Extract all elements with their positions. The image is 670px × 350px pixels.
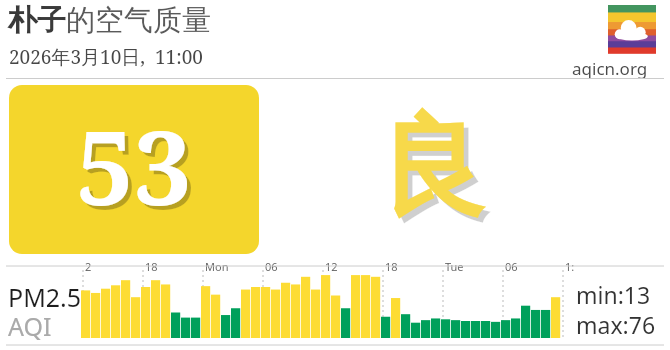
staticText: 06 [505,259,518,274]
staticText: 的空气质量 [66,2,211,39]
staticText: 良 [383,105,491,241]
staticText: 朴子 [8,2,66,39]
staticText: 1: [565,259,575,274]
staticText: AQI [8,309,52,343]
staticText: max:76 [576,309,656,340]
button[interactable]: aqicn.org logo [608,5,656,53]
staticText: 12 [325,259,338,274]
staticText: 53 [80,100,196,239]
staticText: 06 [265,259,278,274]
staticText: Mon [205,259,229,274]
staticText: 18 [385,259,398,274]
staticText: PM2.5 [8,280,82,314]
staticText: 53 [76,96,192,235]
staticText: 2 [85,259,92,274]
staticText: 18 [145,259,158,274]
staticText: Tue [445,259,464,274]
staticText: 2026年3月10日, 11:00 [9,44,203,70]
staticText: min:13 [576,279,651,310]
button[interactable]: 53 [9,85,259,254]
staticText: aqicn.org [572,57,648,80]
staticText: 良 [378,100,486,236]
